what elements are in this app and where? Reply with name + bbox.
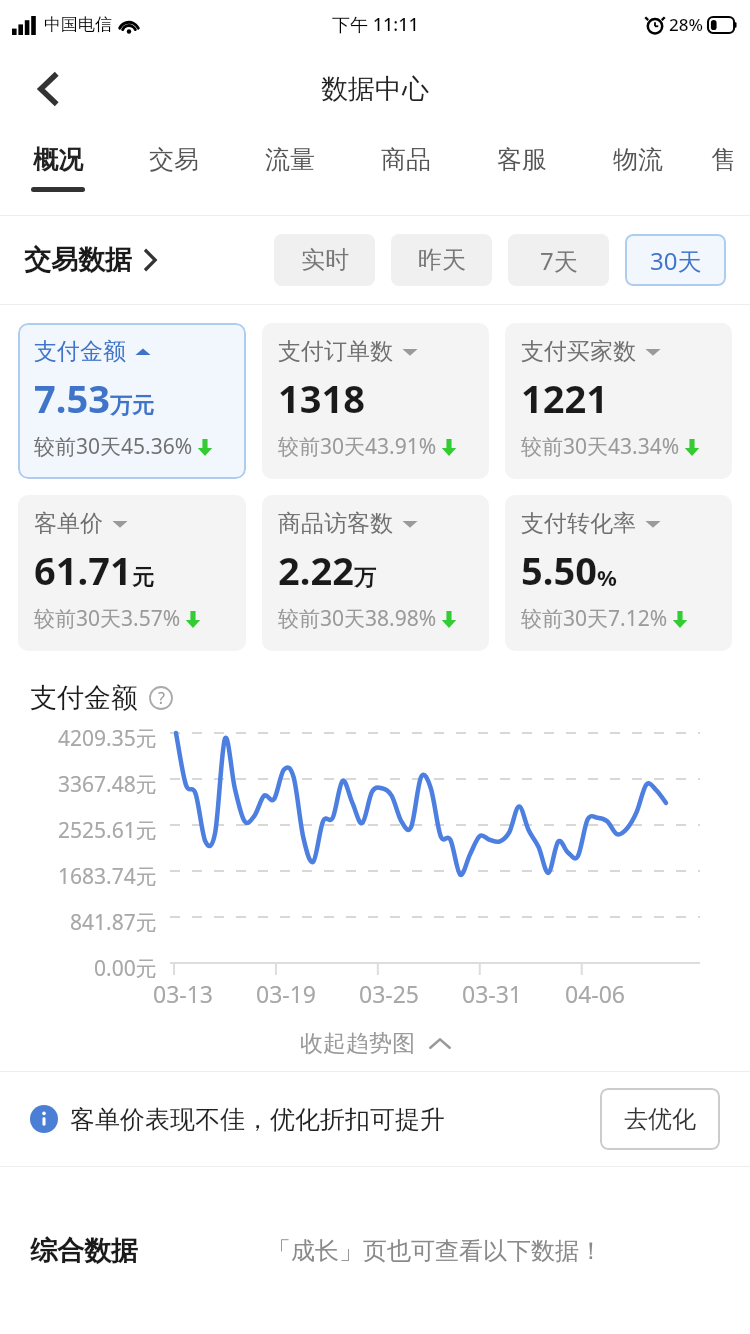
staticText: 较前30天45.36%	[34, 432, 193, 461]
staticText: 支付买家数	[521, 337, 636, 366]
staticText: 较前30天7.12%	[521, 604, 668, 633]
staticText: 客服	[497, 144, 547, 175]
staticText: 28%	[669, 13, 703, 36]
staticText: 去优化	[624, 1104, 696, 1134]
staticText: 03-19	[256, 978, 317, 1009]
staticText: 交易	[149, 144, 199, 175]
button[interactable]: 收起趋势图	[300, 1029, 451, 1058]
button[interactable]: 商品访客数	[262, 495, 489, 651]
staticText: 概况	[33, 144, 83, 175]
button[interactable]: 7天	[508, 234, 609, 286]
staticText: 04-06	[565, 978, 626, 1009]
staticText: 售	[711, 144, 736, 175]
staticText: 物流	[613, 144, 663, 175]
staticText: 1221	[521, 372, 608, 424]
staticText: 支付订单数	[278, 337, 393, 366]
staticText: 较前30天43.34%	[521, 432, 680, 461]
staticText: 03-13	[153, 978, 214, 1009]
button[interactable]: Back	[22, 63, 74, 115]
staticText: 支付转化率	[521, 509, 636, 538]
button[interactable]: 支付订单数	[262, 323, 489, 479]
button[interactable]: 支付买家数	[505, 323, 732, 479]
staticText: 万元	[110, 392, 154, 420]
button[interactable]: 30天	[625, 234, 726, 286]
button[interactable]: 概况	[0, 130, 116, 215]
staticText: 支付金额	[34, 337, 126, 366]
staticText: 交易数据	[24, 243, 132, 277]
staticText: 7.53	[34, 372, 110, 424]
staticText: 30天	[650, 244, 702, 277]
staticText: 1318	[278, 372, 365, 424]
staticText: 中国电信	[44, 14, 112, 35]
button[interactable]: 交易	[116, 130, 232, 215]
staticText: 较前30天38.98%	[278, 604, 437, 633]
button[interactable]: 去优化	[600, 1088, 720, 1150]
staticText: 下午 11:11	[332, 12, 419, 37]
button[interactable]: 物流	[580, 130, 696, 215]
button[interactable]: 昨天	[391, 234, 492, 286]
button[interactable]: 售	[696, 130, 750, 215]
button[interactable]: Help	[148, 685, 174, 711]
staticText: 流量	[265, 144, 315, 175]
staticText: ?	[158, 687, 165, 709]
staticText: 客单价表现不佳，优化折扣可提升	[70, 1104, 445, 1135]
staticText: 5.50	[521, 544, 597, 596]
staticText: 商品	[381, 144, 431, 175]
staticText: 1683.74元	[58, 862, 157, 891]
staticText: 61.71	[34, 544, 132, 596]
staticText: 收起趋势图	[300, 1029, 415, 1058]
staticText: 较前30天43.91%	[278, 432, 437, 461]
staticText: 03-31	[462, 978, 523, 1009]
staticText: 2.22	[278, 544, 354, 596]
staticText: 元	[132, 564, 154, 592]
staticText: 综合数据	[30, 1234, 138, 1268]
staticText: 实时	[301, 245, 349, 275]
staticText: 0.00元	[94, 954, 157, 983]
staticText: 数据中心	[321, 72, 429, 106]
staticText: %	[597, 562, 617, 592]
button[interactable]: 客单价	[18, 495, 246, 651]
staticText: 3367.48元	[58, 770, 157, 799]
staticText: 商品访客数	[278, 509, 393, 538]
button[interactable]: 支付金额	[18, 323, 246, 479]
button[interactable]: 商品	[348, 130, 464, 215]
staticText: 支付金额	[30, 681, 138, 715]
staticText: 7天	[540, 244, 578, 277]
staticText: 03-25	[359, 978, 420, 1009]
staticText: 客单价	[34, 509, 103, 538]
button[interactable]: 客服	[464, 130, 580, 215]
staticText: 较前30天3.57%	[34, 604, 181, 633]
staticText: 2525.61元	[58, 816, 157, 845]
staticText: 4209.35元	[58, 724, 157, 753]
button[interactable]: 支付转化率	[505, 495, 732, 651]
button[interactable]: 交易数据	[24, 243, 158, 277]
staticText: 万	[354, 564, 376, 592]
staticText: 841.87元	[70, 908, 157, 937]
button[interactable]: 流量	[232, 130, 348, 215]
staticText: 昨天	[418, 245, 466, 275]
button[interactable]: 实时	[274, 234, 375, 286]
staticText: 「成长」页也可查看以下数据！	[267, 1236, 603, 1266]
